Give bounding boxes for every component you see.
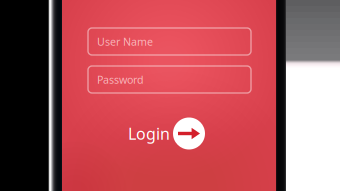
staticText: Login bbox=[128, 123, 170, 144]
staticText: Password bbox=[97, 72, 144, 87]
button[interactable]: Password bbox=[88, 66, 251, 93]
button[interactable]: Login bbox=[128, 117, 205, 149]
staticText: User Name bbox=[97, 34, 153, 49]
button[interactable]: User Name bbox=[88, 28, 251, 55]
